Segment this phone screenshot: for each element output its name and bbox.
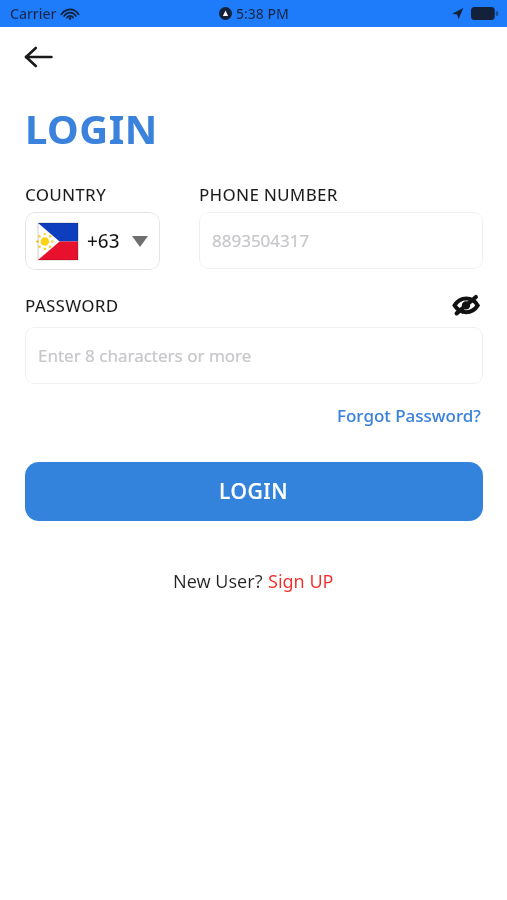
button[interactable]: Forgot Password? <box>335 401 483 430</box>
staticText: Carrier <box>10 4 57 23</box>
staticText: Enter 8 characters or more <box>38 344 252 367</box>
button[interactable]: Back <box>16 35 60 79</box>
staticText: Sign UP <box>268 569 334 594</box>
staticText: +63 <box>87 228 120 254</box>
staticText: New User? <box>173 569 268 594</box>
button[interactable]: Enter 8 characters or more <box>25 327 483 384</box>
staticText: Forgot Password? <box>337 404 481 427</box>
staticText: PASSWORD <box>25 294 119 317</box>
staticText: 8893504317 <box>212 229 310 252</box>
button[interactable]: Show password <box>449 288 483 322</box>
button[interactable]: Sign UP <box>268 569 334 594</box>
staticText: LOGIN <box>219 477 289 506</box>
button[interactable]: +63 <box>25 212 160 270</box>
staticText: COUNTRY <box>25 183 107 206</box>
button[interactable]: 8893504317 <box>199 212 483 269</box>
staticText: LOGIN <box>25 101 158 155</box>
staticText: 5:38 PM <box>236 4 289 23</box>
staticText: PHONE NUMBER <box>199 183 338 206</box>
button[interactable]: LOGIN <box>25 462 483 521</box>
